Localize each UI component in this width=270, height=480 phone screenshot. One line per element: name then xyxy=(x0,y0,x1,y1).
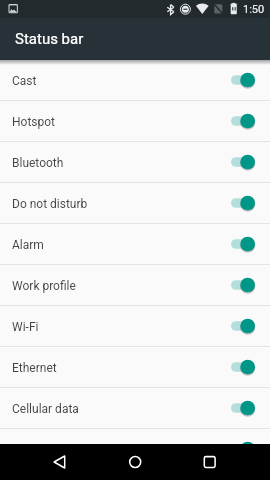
button[interactable]: Alarm xyxy=(0,224,270,265)
button[interactable]: Do not disturb xyxy=(0,183,270,224)
button[interactable]: Work profile xyxy=(0,265,270,306)
staticText: Do not disturb xyxy=(12,197,88,211)
button[interactable]: Bluetooth xyxy=(0,142,270,183)
button[interactable]: Hotspot xyxy=(0,101,270,142)
button[interactable]: Back xyxy=(37,444,82,480)
staticText: 1:50 xyxy=(243,3,265,16)
button[interactable]: Recents xyxy=(187,444,232,480)
staticText: Cellular data xyxy=(12,402,79,416)
button[interactable]: Airplane mode xyxy=(0,429,270,444)
staticText: Alarm xyxy=(12,238,44,252)
staticText: Hotspot xyxy=(12,115,56,129)
staticText: Work profile xyxy=(12,279,76,293)
button[interactable]: Cellular data xyxy=(0,388,270,429)
staticText: Cast xyxy=(12,74,37,88)
staticText: Ethernet xyxy=(12,361,57,375)
button[interactable]: Ethernet xyxy=(0,347,270,388)
staticText: Bluetooth xyxy=(12,156,64,170)
button[interactable]: Wi-Fi xyxy=(0,306,270,347)
button[interactable]: Cast xyxy=(0,60,270,101)
staticText: Status bar xyxy=(15,30,84,48)
staticText: Wi-Fi xyxy=(12,320,39,334)
button[interactable]: Home xyxy=(113,444,158,480)
